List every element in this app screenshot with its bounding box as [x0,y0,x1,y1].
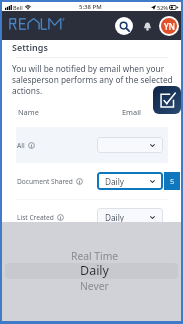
button[interactable]: Daily [97,172,163,190]
staticText: Daily [105,212,124,223]
button[interactable]: Daily [97,208,163,226]
staticText: 5 [170,176,175,186]
staticText: Email [122,107,141,117]
staticText: 52% [157,4,168,11]
button[interactable]: All [17,127,97,163]
button[interactable]: Search [115,17,133,35]
staticText: List Created [17,213,54,222]
staticText: 5:38 PM [79,3,102,11]
staticText: All [17,141,25,150]
button[interactable]: Profile [161,18,177,34]
staticText: Document Shared [17,177,73,186]
staticText: Never [80,279,109,293]
staticText: Name [18,107,39,117]
button[interactable]: List Created [17,199,97,235]
staticText: Settings [12,41,48,53]
button[interactable]: Select all [153,86,181,114]
staticText: Daily [105,176,124,187]
staticText: Real Time [71,249,119,263]
staticText: You will be notified by email when your … [12,63,178,96]
button[interactable] [97,137,163,153]
staticText: YN [164,21,175,32]
staticText: Bell [13,4,23,11]
button[interactable]: 5 [164,172,180,190]
button[interactable]: Notifications [139,18,155,34]
staticText: Daily [80,262,109,279]
button[interactable]: Document Shared [17,163,97,199]
